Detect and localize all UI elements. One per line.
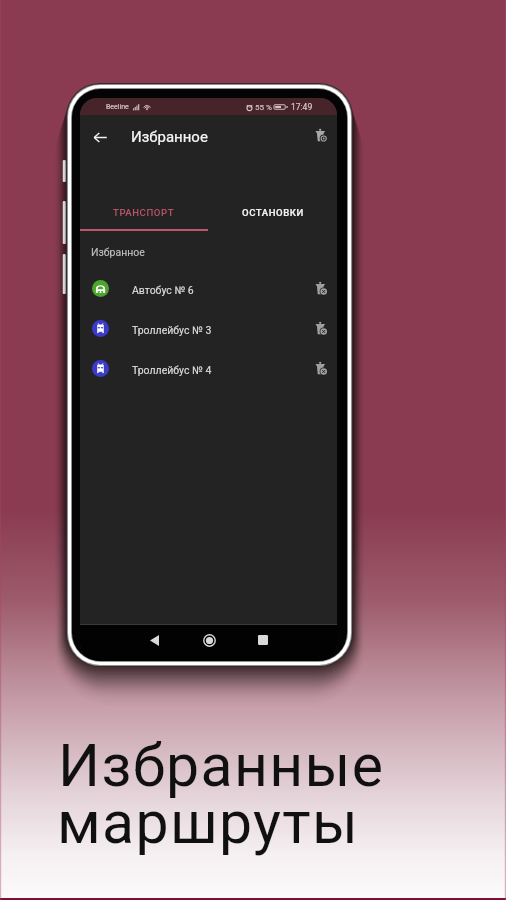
button[interactable]: Clear history [308, 123, 332, 147]
staticText: Избранные [58, 731, 385, 800]
staticText: Троллейбус № 3 [132, 324, 212, 336]
staticText: Троллейбус № 4 [132, 364, 212, 376]
button[interactable]: Remove from favourites [308, 316, 332, 340]
staticText: 55 % [255, 103, 272, 112]
button[interactable]: Автобус № 6 [80, 268, 337, 308]
staticText: Beeline [106, 103, 129, 111]
button[interactable]: ОСТАНОВКИ [208, 195, 337, 229]
staticText: ОСТАНОВКИ [242, 207, 304, 218]
button[interactable]: Троллейбус № 3 [80, 308, 337, 348]
button[interactable]: Back [141, 627, 167, 653]
button[interactable]: Троллейбус № 4 [80, 348, 337, 388]
button[interactable]: ТРАНСПОРТ [80, 195, 208, 229]
button[interactable]: Recent apps [250, 627, 276, 653]
button[interactable]: Remove from favourites [308, 356, 332, 380]
staticText: Избранное [91, 246, 145, 258]
button[interactable]: Back [88, 125, 112, 149]
staticText: маршруты [57, 788, 360, 857]
staticText: Избранное [131, 128, 208, 146]
staticText: 17:49 [291, 102, 313, 112]
button[interactable]: Home [196, 627, 222, 653]
button[interactable]: Remove from favourites [308, 276, 332, 300]
staticText: ТРАНСПОРТ [113, 207, 175, 218]
staticText: Автобус № 6 [132, 284, 194, 296]
